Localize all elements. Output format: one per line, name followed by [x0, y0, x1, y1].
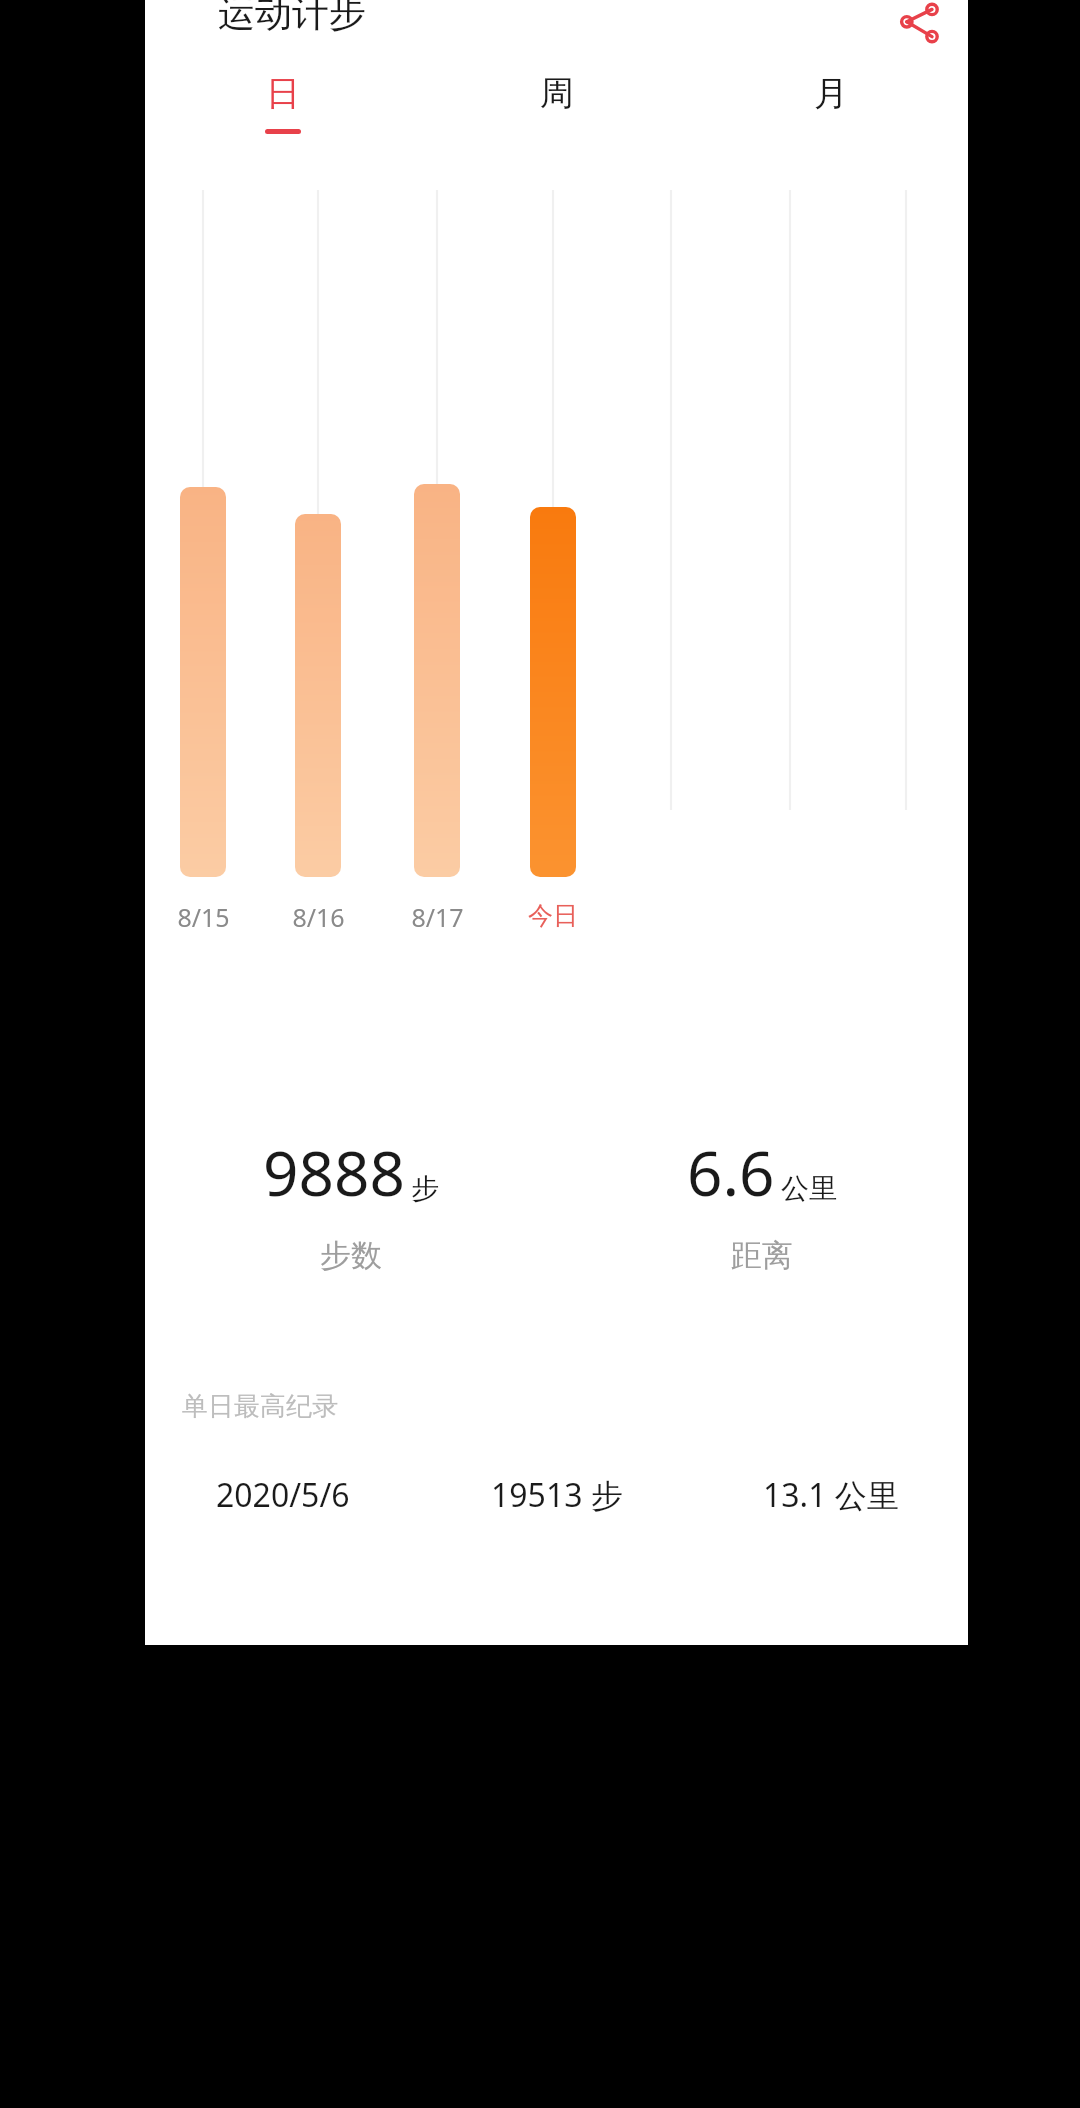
staticText: 运动计步: [218, 0, 366, 37]
staticText: 2020/5/6: [216, 1473, 350, 1517]
staticText: 步: [411, 1171, 439, 1206]
button[interactable]: 月: [694, 72, 968, 162]
button[interactable]: 周: [420, 72, 694, 162]
staticText: 8/15: [177, 900, 230, 934]
staticText: 步数: [320, 1236, 382, 1275]
button[interactable]: 日: [145, 72, 420, 162]
staticText: 8/17: [411, 900, 464, 934]
staticText: 距离: [731, 1236, 793, 1275]
staticText: 6.6: [687, 1130, 775, 1214]
staticText: 周: [540, 72, 574, 115]
staticText: 月: [814, 72, 848, 115]
staticText: 单日最高纪录: [182, 1390, 338, 1423]
staticText: 日: [266, 72, 300, 115]
button[interactable]: Share: [875, 0, 965, 68]
staticText: 13.1 公里: [763, 1473, 899, 1517]
staticText: 公里: [781, 1171, 837, 1206]
staticText: 19513 步: [491, 1473, 623, 1517]
staticText: 今日: [528, 900, 578, 931]
staticText: 8/16: [292, 900, 345, 934]
staticText: 9888: [263, 1130, 405, 1214]
